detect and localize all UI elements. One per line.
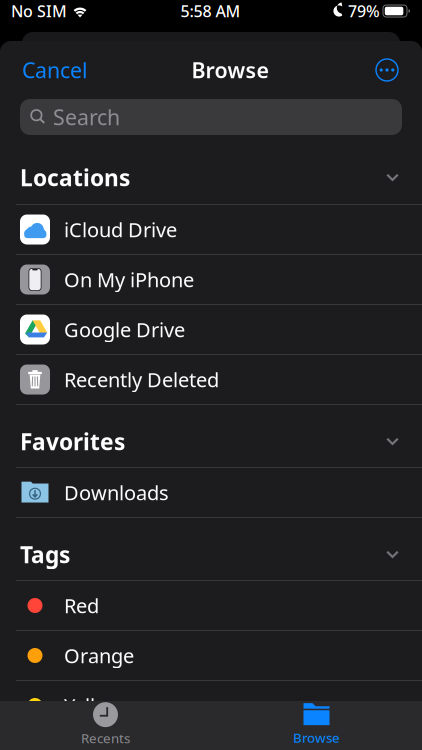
staticText: iCloud Drive (64, 216, 177, 243)
staticText: Recents (81, 729, 130, 747)
button[interactable]: Google Drive (0, 305, 422, 354)
staticText: 5:58 AM (180, 0, 240, 22)
staticText: On My iPhone (64, 266, 194, 293)
staticText: Red (64, 592, 99, 619)
staticText: Tags (20, 539, 70, 569)
staticText: No SIM (11, 0, 67, 22)
button[interactable]: Cancel (22, 48, 88, 92)
staticText: Locations (20, 162, 130, 192)
button[interactable]: Tags (0, 518, 422, 580)
staticText: Favorites (20, 426, 125, 456)
staticText: Orange (64, 642, 134, 669)
staticText: Browse (293, 729, 340, 746)
button[interactable]: Search (0, 99, 422, 151)
staticText: Cancel (22, 56, 88, 84)
staticText: Downloads (64, 479, 169, 506)
button[interactable]: Favorites (0, 405, 422, 467)
button[interactable]: Yellow (0, 681, 422, 730)
button[interactable]: More (372, 55, 402, 85)
button[interactable]: iCloud Drive (0, 205, 422, 254)
button[interactable]: Orange (0, 631, 422, 680)
button[interactable]: On My iPhone (0, 255, 422, 304)
button[interactable]: Browse (211, 701, 422, 750)
button[interactable]: Locations (0, 151, 422, 204)
staticText: Google Drive (64, 316, 185, 343)
button[interactable]: Red (0, 581, 422, 630)
button[interactable]: Recents (0, 701, 211, 750)
button[interactable]: Recently Deleted (0, 355, 422, 404)
staticText: 79% (348, 0, 380, 22)
staticText: Browse (191, 56, 268, 84)
staticText: Yellow (64, 692, 123, 719)
staticText: Search (53, 103, 120, 131)
button[interactable]: Downloads (0, 468, 422, 517)
staticText: Recently Deleted (64, 366, 219, 393)
